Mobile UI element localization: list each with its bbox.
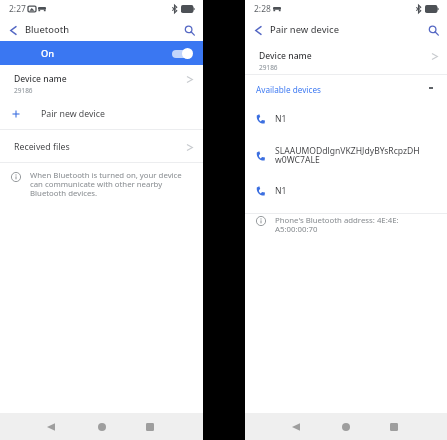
button[interactable]: Recents xyxy=(374,413,414,440)
button[interactable]: N1 xyxy=(245,101,447,137)
staticText: Bluetooth xyxy=(25,23,70,36)
button[interactable]: Back xyxy=(248,20,268,40)
staticText: 29186 xyxy=(259,63,278,72)
staticText: SLAAUMODdlgnVKZHJdyBYsRcpzDH​w0WC7ALE xyxy=(275,145,427,166)
button[interactable]: Back xyxy=(3,20,23,40)
staticText: Pair new device xyxy=(41,108,105,120)
staticText: On xyxy=(41,47,55,60)
staticText: Phone's Bluetooth address: 4E:4E:​A5:00:… xyxy=(275,215,400,234)
button[interactable]: SLAAUMODdlgnVKZHJdyBYsRcpzDH​w0WC7ALE xyxy=(245,137,447,174)
staticText: 29186 xyxy=(14,86,33,95)
button[interactable]: On xyxy=(0,41,203,65)
button[interactable]: Device name xyxy=(0,65,203,100)
button[interactable]: Home xyxy=(326,413,366,440)
staticText: 2:27 xyxy=(9,3,26,15)
button[interactable]: Device name xyxy=(245,41,447,74)
staticText: When Bluetooth is turned on, your device… xyxy=(30,170,186,198)
button[interactable]: N1 xyxy=(245,174,447,207)
staticText: Pair new device xyxy=(270,23,339,36)
button[interactable]: Back xyxy=(276,413,316,440)
staticText: Received files xyxy=(14,141,70,153)
staticText: Device name xyxy=(14,73,67,85)
button[interactable]: Received files xyxy=(0,130,203,162)
button[interactable]: Search xyxy=(179,20,199,40)
button[interactable]: Home xyxy=(82,413,122,440)
staticText: Device name xyxy=(259,50,312,62)
staticText: 2:28 xyxy=(254,3,271,15)
button[interactable]: Search xyxy=(423,20,443,40)
staticText: N1 xyxy=(275,185,427,197)
staticText: Available devices xyxy=(256,84,321,95)
button[interactable]: Recents xyxy=(130,413,170,440)
staticText: N1 xyxy=(275,113,427,125)
button[interactable]: Back xyxy=(31,413,71,440)
button[interactable]: Pair new device xyxy=(0,100,203,129)
